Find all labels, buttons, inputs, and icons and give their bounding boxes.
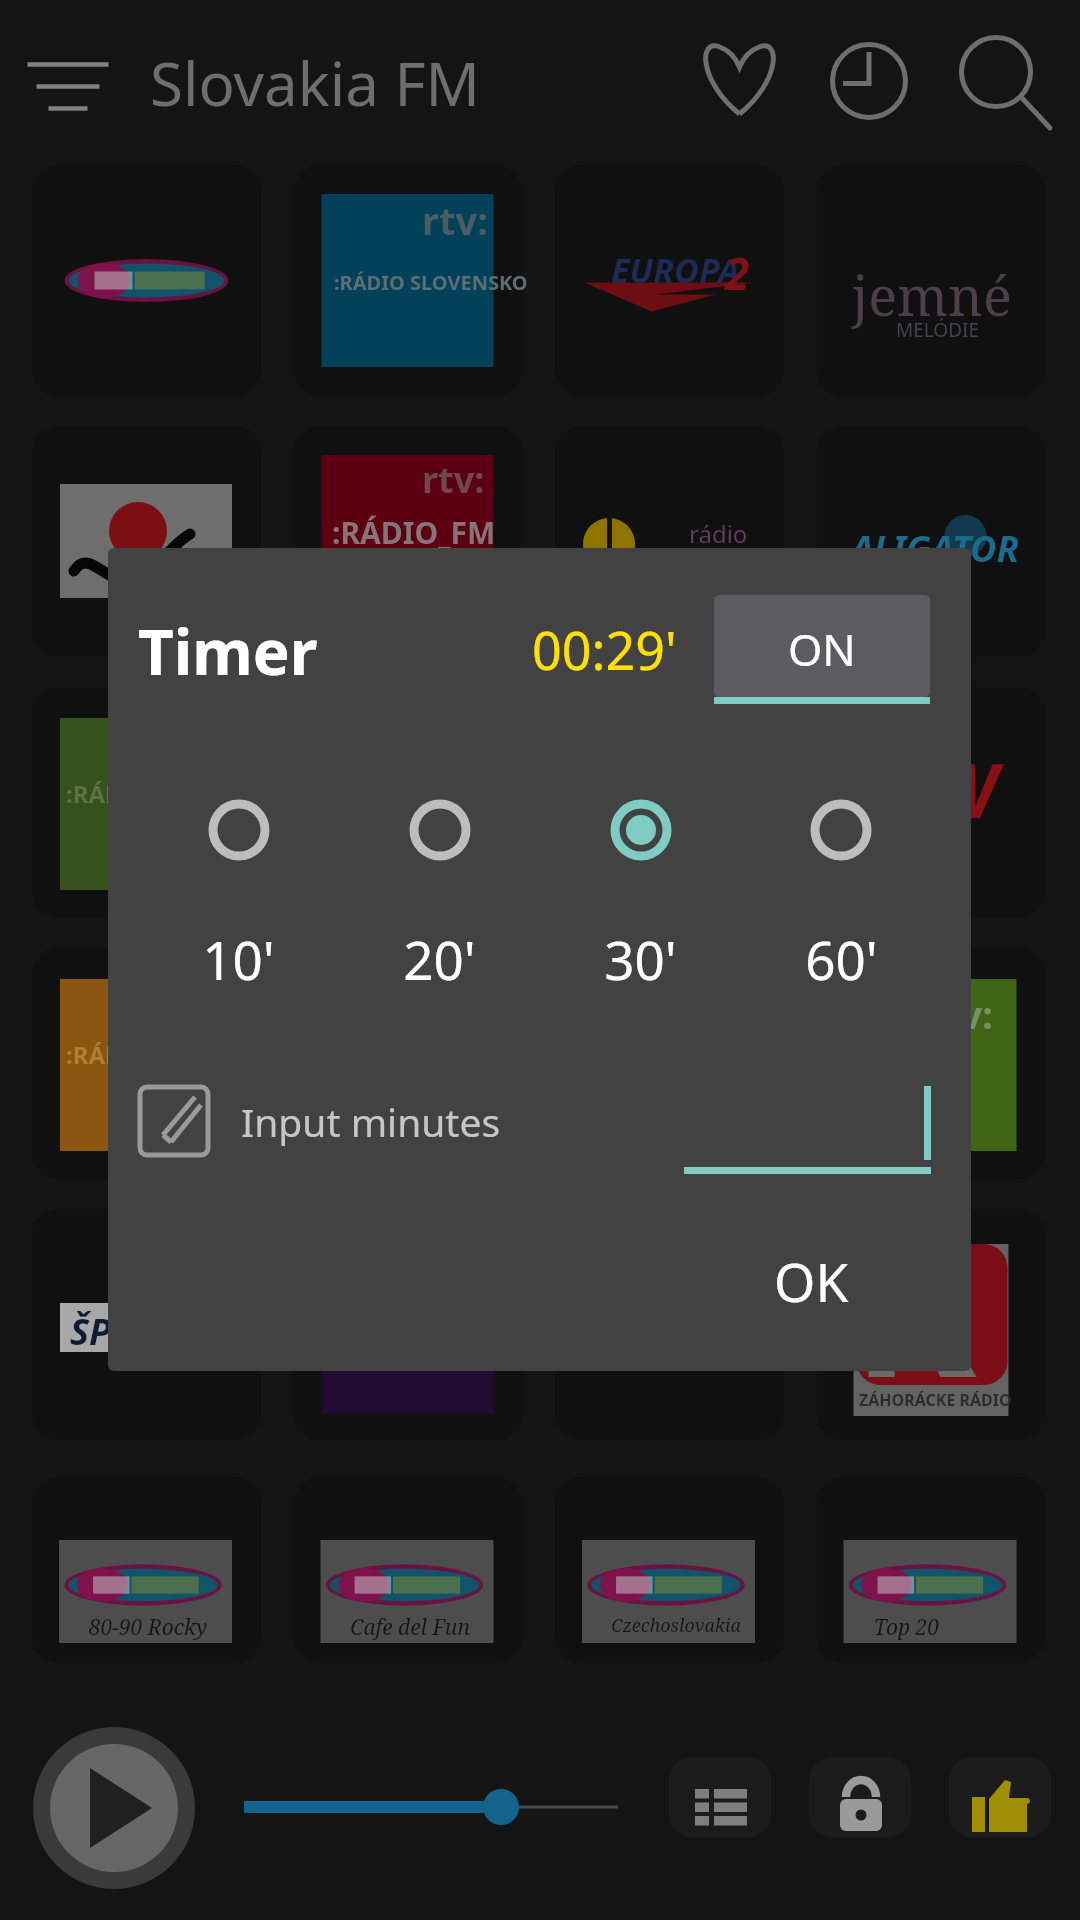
staticText: BYSTRICA xyxy=(857,1082,939,1107)
staticText: 10' xyxy=(202,923,275,995)
button[interactable]: Input minutes xyxy=(138,1066,638,1176)
button[interactable] xyxy=(684,1086,931,1176)
button[interactable]: 20' xyxy=(339,798,540,995)
button[interactable]: Like xyxy=(949,1757,1051,1837)
button[interactable]: Sleep timer xyxy=(827,39,911,123)
staticText: Slovakia FM xyxy=(150,42,480,124)
staticText: ŠPORT xyxy=(70,1307,179,1356)
staticText: rtv: xyxy=(927,988,993,1040)
staticText: :RÁDIO_FM xyxy=(332,512,496,553)
staticText: Top 20 xyxy=(873,1613,939,1642)
staticText: :RÁDIO SLOVENSKO xyxy=(334,269,528,296)
staticText: rtv: xyxy=(422,455,485,504)
staticText: rádio xyxy=(689,517,748,550)
staticText: 30' xyxy=(604,923,677,995)
staticText: OK xyxy=(774,1245,849,1317)
button[interactable]: 10' xyxy=(138,798,339,995)
staticText: W xyxy=(929,737,997,841)
button[interactable]: Favorites xyxy=(694,38,786,122)
staticText: Czechoslovakia xyxy=(611,1613,741,1638)
button[interactable]: Lock xyxy=(809,1757,911,1837)
staticText: Input minutes xyxy=(241,1095,501,1148)
staticText: Timer xyxy=(138,609,318,693)
staticText: ALIGATOR xyxy=(851,524,1019,573)
staticText: 80-90 Rocky xyxy=(88,1613,207,1642)
button[interactable]: Menu xyxy=(8,23,126,121)
button[interactable]: ON xyxy=(714,595,930,704)
button[interactable]: Playlist xyxy=(669,1757,771,1837)
staticText: ZÁHORÁCKE RÁDIO xyxy=(859,1389,1012,1411)
staticText: :RÁDIO xyxy=(66,1038,151,1071)
staticText: ON xyxy=(788,619,856,679)
staticText: 20' xyxy=(403,923,476,995)
button[interactable]: Search xyxy=(955,31,1055,131)
staticText: 00:29' xyxy=(532,614,677,685)
staticText: EUROPA xyxy=(611,247,740,293)
button[interactable]: 60' xyxy=(741,798,941,995)
button[interactable]: OK xyxy=(700,1221,922,1341)
staticText: 60' xyxy=(805,923,878,995)
staticText: :RÁDIO xyxy=(66,777,151,810)
staticText: Cafe del Fun xyxy=(350,1613,470,1642)
staticText: jemné xyxy=(852,258,1012,332)
staticText: MELÓDIE xyxy=(896,317,980,343)
staticText: rtv: xyxy=(422,194,488,246)
staticText: 2 xyxy=(725,243,750,303)
button[interactable]: 30' xyxy=(540,798,741,995)
